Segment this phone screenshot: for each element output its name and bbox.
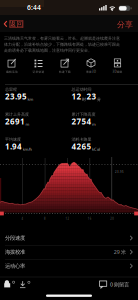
staticText: 运动心率 xyxy=(5,263,25,269)
staticText: 23 xyxy=(86,91,96,102)
staticText: 4265 xyxy=(71,141,91,152)
button[interactable]: 分享 xyxy=(117,18,133,30)
staticText: 23.95 xyxy=(115,170,124,174)
button[interactable]: 海拔校准 xyxy=(0,245,138,259)
staticText: 分 xyxy=(97,97,101,102)
button[interactable] xyxy=(3,280,16,290)
staticText: 记录轨迹 xyxy=(32,70,44,73)
button[interactable]: 记录轨迹 xyxy=(25,56,51,76)
staticText: 分享 xyxy=(117,20,133,29)
button[interactable] xyxy=(19,280,31,289)
button[interactable]: 0 则留言 xyxy=(99,279,129,290)
staticText: 16 xyxy=(88,217,92,220)
staticText: 23.95 xyxy=(5,91,27,102)
staticText: 平均速度 xyxy=(5,137,21,142)
button[interactable]: 分段速度 xyxy=(0,231,138,245)
staticText: 4 xyxy=(22,217,24,220)
staticText: 总运动时间 xyxy=(71,87,91,92)
button[interactable]: 轨迹下载 xyxy=(52,56,78,76)
staticText: km xyxy=(27,96,33,102)
staticText: 2754 xyxy=(71,116,91,127)
staticText: 12 xyxy=(71,91,81,102)
staticText: 29 米 xyxy=(114,248,126,256)
staticText: 6:44 xyxy=(27,3,41,12)
button[interactable]: 运动心率 xyxy=(0,259,138,273)
button[interactable]: 3D巡航 xyxy=(104,56,130,76)
staticText: 消耗卡路里 xyxy=(71,137,91,142)
staticText: 轨迹下载 xyxy=(59,70,71,73)
staticText: 三清线路天气常变，有雾只能看云，叶长。起脚就是连续爬升注意 xyxy=(4,36,120,41)
staticText: m xyxy=(25,121,29,127)
staticText: 返回 xyxy=(9,20,23,28)
button[interactable]: 编辑活动 xyxy=(0,56,25,76)
staticText: 3D巡航 xyxy=(112,70,122,74)
staticText: 海拔3D xyxy=(86,70,96,73)
staticText: 总里程 xyxy=(5,87,17,92)
staticText: 分段速度 xyxy=(5,235,25,241)
staticText: 体力分配，沿途补给点较少，下撤路线有两处，轨迹已校准可跟走 xyxy=(4,42,120,47)
staticText: 8 xyxy=(44,217,46,220)
button[interactable]: 海拔3D xyxy=(78,56,104,76)
staticText: 20 xyxy=(110,217,114,220)
staticText: 编辑活动 xyxy=(6,70,18,73)
staticText: 12 xyxy=(65,217,69,220)
staticText: 走前请务必下载离线地图，注意结伴同行更安全。 xyxy=(4,48,92,53)
button[interactable]: 返回 xyxy=(4,18,23,30)
staticText: 0 则留言 xyxy=(110,281,129,288)
staticText: km/h xyxy=(22,146,31,152)
staticText: 1.94 xyxy=(5,141,22,152)
staticText: 海拔校准 xyxy=(5,249,25,255)
staticText: 时 xyxy=(82,97,86,102)
staticText: 2691 xyxy=(5,116,25,127)
staticText: 累计上升高度 xyxy=(5,112,29,117)
staticText: m xyxy=(92,121,96,127)
staticText: kCal xyxy=(92,146,100,152)
staticText: 累计下降高度 xyxy=(71,112,95,117)
